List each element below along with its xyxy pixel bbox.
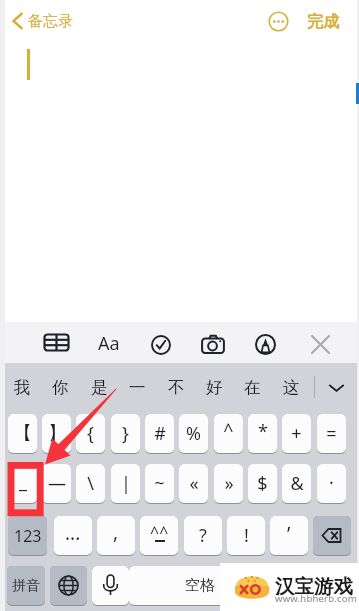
button[interactable] — [184, 516, 222, 556]
staticText: | — [121, 471, 131, 496]
button[interactable] — [7, 566, 45, 606]
button[interactable] — [270, 516, 308, 556]
staticText: = — [326, 421, 337, 446]
button[interactable] — [227, 516, 265, 556]
staticText: 拼音 — [12, 577, 40, 595]
staticText: * — [258, 419, 268, 444]
staticText: 在 — [244, 377, 261, 398]
button[interactable]: Expand candidates — [326, 377, 347, 398]
button[interactable]: 这 — [274, 370, 308, 404]
staticText: { — [87, 421, 94, 446]
button[interactable] — [214, 414, 243, 454]
staticText: » — [224, 471, 234, 496]
button[interactable] — [317, 464, 346, 504]
button[interactable] — [76, 464, 105, 504]
button[interactable]: Switch language — [50, 566, 87, 606]
button[interactable] — [145, 414, 174, 454]
staticText: 【 — [14, 422, 32, 445]
button[interactable] — [42, 414, 71, 454]
button[interactable] — [317, 414, 346, 454]
staticText: 不 — [168, 377, 185, 398]
staticText: ! — [244, 523, 249, 548]
button[interactable] — [8, 516, 47, 556]
button[interactable] — [282, 464, 311, 504]
staticText: ... — [65, 520, 81, 546]
button[interactable]: More options — [268, 11, 289, 32]
button[interactable]: 你 — [43, 370, 77, 404]
staticText: } — [122, 421, 129, 446]
staticText: $ — [257, 471, 268, 496]
staticText: 是 — [91, 377, 108, 398]
staticText: ~ — [154, 471, 165, 496]
button[interactable] — [97, 516, 135, 556]
staticText: + — [291, 421, 302, 446]
button[interactable]: 一 — [120, 370, 154, 404]
button[interactable]: Close keyboard — [312, 336, 329, 353]
button[interactable]: 在 — [235, 370, 269, 404]
button[interactable]: Voice input — [92, 566, 129, 606]
button[interactable] — [8, 414, 37, 454]
button[interactable] — [282, 414, 311, 454]
button[interactable] — [248, 414, 277, 454]
staticText: « — [189, 471, 199, 496]
button[interactable] — [54, 516, 92, 556]
staticText: www.hbherb.com — [275, 592, 357, 605]
button[interactable]: Backspace — [313, 516, 351, 556]
button[interactable] — [140, 516, 178, 556]
staticText: — — [48, 471, 66, 496]
staticText: 备忘录 — [28, 12, 73, 31]
button[interactable]: 我 — [5, 370, 39, 404]
staticText: 123 — [14, 525, 42, 547]
staticText: 汉宝游戏 — [275, 574, 353, 599]
staticText: ? — [199, 523, 207, 548]
staticText: 好 — [206, 377, 223, 398]
button[interactable] — [179, 414, 208, 454]
button[interactable]: 好 — [197, 370, 231, 404]
button[interactable]: 不 — [159, 370, 193, 404]
button[interactable]: Checklist — [151, 335, 171, 355]
staticText: ^^ — [150, 521, 169, 543]
button[interactable] — [274, 566, 351, 606]
button[interactable] — [76, 414, 105, 454]
button[interactable] — [8, 464, 37, 504]
staticText: · — [329, 470, 334, 495]
button[interactable] — [42, 464, 71, 504]
staticText: 这 — [283, 377, 300, 398]
staticText: 一 — [129, 377, 146, 398]
button[interactable] — [179, 464, 208, 504]
staticText: 你 — [52, 377, 69, 398]
staticText: \ — [87, 471, 94, 496]
staticText: 我 — [14, 377, 31, 398]
button[interactable] — [111, 414, 140, 454]
staticText: ’ — [287, 521, 291, 547]
button[interactable]: 是 — [82, 370, 116, 404]
button[interactable]: Markup — [255, 334, 276, 355]
button[interactable]: 完成 — [303, 8, 343, 36]
staticText: Aa — [98, 331, 120, 356]
staticText: ^ — [223, 418, 234, 443]
button[interactable] — [111, 464, 140, 504]
staticText: # — [154, 421, 166, 446]
staticText: _ — [19, 469, 27, 494]
staticText: & — [290, 471, 304, 496]
button[interactable] — [214, 464, 243, 504]
button[interactable] — [145, 464, 174, 504]
button[interactable]: 备忘录 — [8, 6, 79, 36]
button[interactable] — [248, 464, 277, 504]
staticText: 】 — [48, 422, 66, 445]
button[interactable]: Table — [42, 332, 71, 353]
staticText: % — [186, 421, 201, 446]
button[interactable]: Aa — [96, 329, 122, 358]
staticText: , — [113, 519, 119, 545]
staticText: 换行 — [298, 576, 328, 595]
staticText: 完成 — [307, 12, 339, 32]
staticText: 空格 — [185, 576, 215, 595]
button[interactable]: Camera — [201, 335, 225, 354]
button[interactable] — [129, 566, 270, 606]
